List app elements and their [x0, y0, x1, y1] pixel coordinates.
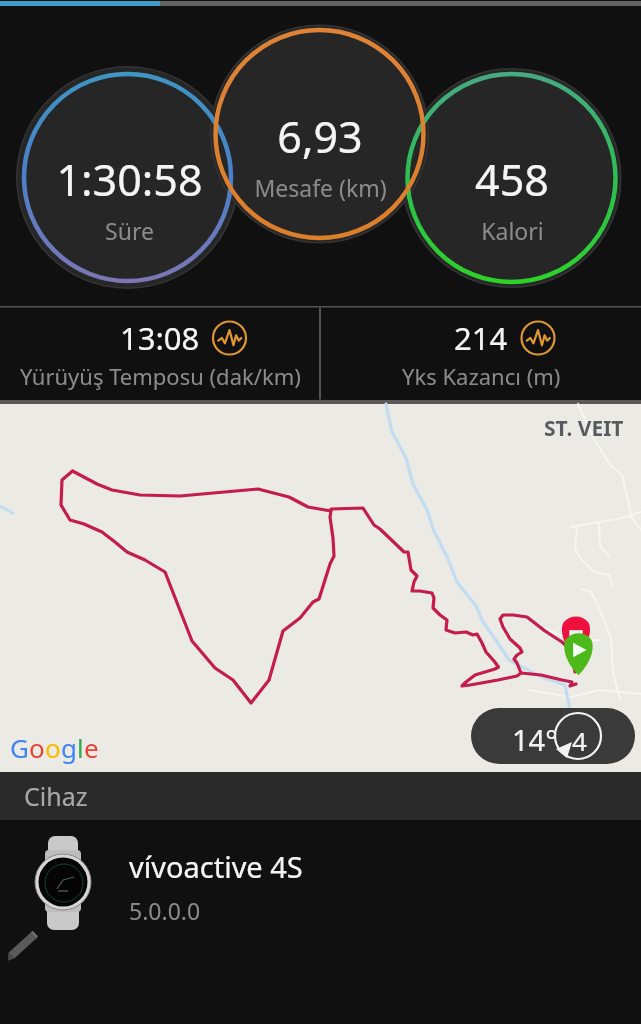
staticText: Mesafe (km) [254, 172, 387, 202]
button[interactable]: 14° [471, 708, 635, 764]
staticText: Cihaz [24, 779, 88, 813]
staticText: e [84, 730, 99, 765]
staticText: ST. VEIT [544, 414, 624, 443]
staticText: l [77, 730, 84, 765]
staticText: 4 [572, 723, 587, 758]
button[interactable]: vívoactive 4S [0, 820, 641, 957]
staticText: o [29, 730, 45, 765]
staticText: Kalori [481, 215, 544, 245]
staticText: 5.0.0.0 [129, 895, 201, 926]
staticText: Yks Kazancı (m) [402, 361, 561, 391]
staticText: 214 [454, 317, 508, 359]
staticText: o [45, 730, 61, 765]
button[interactable]: 214 [321, 306, 641, 404]
staticText: 14° [512, 720, 558, 759]
staticText: Yürüyüş Temposu (dak/km) [20, 361, 301, 391]
staticText: vívoactive 4S [129, 847, 303, 886]
staticText: g [61, 730, 77, 765]
staticText: G [10, 730, 29, 765]
staticText: 458 [475, 150, 549, 206]
button[interactable]: 13:08 [0, 306, 320, 404]
staticText: 13:08 [120, 317, 200, 359]
staticText: Süre [105, 215, 154, 245]
staticText: 6,93 [277, 107, 363, 163]
staticText: 1:30:58 [56, 150, 203, 206]
button[interactable]: Edit [4, 928, 38, 962]
